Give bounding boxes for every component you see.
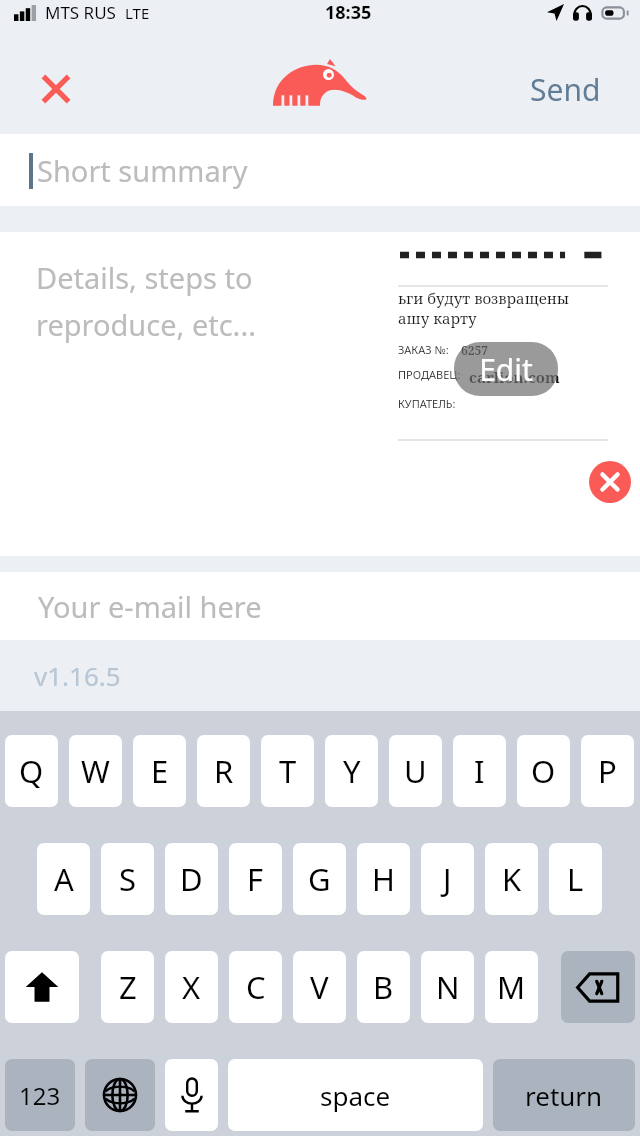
button[interactable]: S [101, 843, 154, 915]
staticText: ПРОДАВЕЦ: [398, 367, 461, 382]
button[interactable]: H [357, 843, 410, 915]
staticText: I [474, 750, 485, 792]
button[interactable]: D [165, 843, 218, 915]
staticText: ашу карту [398, 308, 477, 328]
button[interactable]: Send [490, 44, 640, 134]
button[interactable]: Details, steps to [0, 232, 640, 556]
button[interactable]: X [165, 951, 218, 1023]
staticText: C [246, 966, 266, 1008]
button[interactable]: J [421, 843, 474, 915]
staticText: O [531, 750, 556, 792]
staticText: L [567, 858, 584, 900]
staticText: G [308, 858, 331, 900]
button[interactable]: return [493, 1059, 635, 1131]
button[interactable]: R [197, 735, 250, 807]
button[interactable]: Y [325, 735, 378, 807]
staticText: Short summary [37, 151, 248, 190]
staticText: 123 [19, 1079, 61, 1112]
staticText: B [373, 966, 394, 1008]
button[interactable]: F [229, 843, 282, 915]
staticText: Your e-mail here [38, 587, 262, 626]
button[interactable]: ьги будут возвращены [396, 238, 610, 443]
staticText: K [502, 858, 522, 900]
button[interactable]: P [581, 735, 634, 807]
staticText: W [81, 750, 110, 792]
staticText: return [525, 1078, 603, 1113]
staticText: КУПАТЕЛЬ: [398, 396, 456, 411]
button[interactable]: M [485, 951, 538, 1023]
staticText: 6257 [461, 342, 489, 358]
staticText: H [372, 858, 395, 900]
button[interactable]: G [293, 843, 346, 915]
button[interactable]: 123 [5, 1059, 75, 1131]
button[interactable]: O [517, 735, 570, 807]
staticText: U [404, 750, 427, 792]
button[interactable]: A [37, 843, 90, 915]
staticText: Q [19, 750, 44, 792]
button[interactable]: T [261, 735, 314, 807]
button[interactable]: K [485, 843, 538, 915]
staticText: P [598, 750, 617, 792]
staticText: T [279, 750, 297, 792]
button[interactable]: Your e-mail here [0, 572, 640, 640]
staticText: F [247, 858, 264, 900]
staticText: D [180, 858, 203, 900]
staticText: 18:35 [325, 0, 372, 25]
staticText: LTE [125, 3, 150, 23]
staticText: A [54, 858, 74, 900]
button[interactable]: U [389, 735, 442, 807]
button[interactable]: Close [0, 44, 112, 134]
staticText: reproduce, etc... [36, 305, 256, 344]
staticText: R [214, 750, 234, 792]
staticText: Y [343, 750, 361, 792]
button[interactable]: Z [101, 951, 154, 1023]
staticText: Details, steps to [36, 258, 253, 297]
button[interactable]: Shift [5, 951, 79, 1023]
staticText: S [119, 858, 137, 900]
button[interactable]: Short summary [0, 134, 640, 206]
button[interactable]: C [229, 951, 282, 1023]
staticText: MTS RUS [45, 1, 116, 24]
button[interactable]: Q [5, 735, 58, 807]
button[interactable]: Dictate [165, 1059, 218, 1131]
button[interactable]: E [133, 735, 186, 807]
button[interactable]: Edit [454, 342, 558, 396]
button[interactable]: Change keyboard language [85, 1059, 155, 1131]
button[interactable]: W [69, 735, 122, 807]
button[interactable]: I [453, 735, 506, 807]
staticText: carlion.com [469, 367, 560, 387]
button[interactable]: Backspace [561, 951, 635, 1023]
button[interactable]: V [293, 951, 346, 1023]
staticText: Z [119, 966, 137, 1008]
staticText: Edit [479, 349, 533, 390]
staticText: space [320, 1078, 391, 1113]
button[interactable]: Remove attachment [589, 461, 631, 503]
staticText: X [182, 966, 201, 1008]
button[interactable]: B [357, 951, 410, 1023]
button[interactable]: space [228, 1059, 483, 1131]
staticText: M [497, 966, 526, 1008]
staticText: ЗАКАЗ №: [398, 342, 449, 357]
staticText: E [151, 750, 169, 792]
button[interactable]: L [549, 843, 602, 915]
staticText: v1.16.5 [34, 658, 121, 693]
staticText: J [443, 858, 452, 900]
button[interactable]: N [421, 951, 474, 1023]
staticText: V [310, 966, 329, 1008]
staticText: N [436, 966, 460, 1008]
staticText: ьги будут возвращены [398, 288, 570, 308]
staticText: Send [530, 69, 601, 110]
